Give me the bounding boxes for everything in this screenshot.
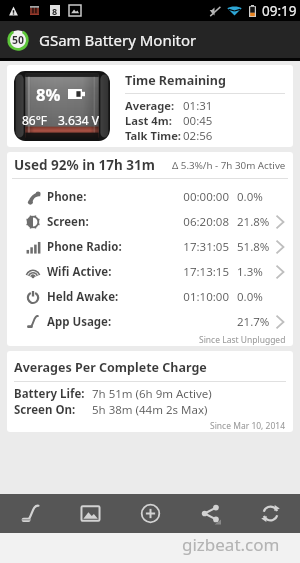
staticText: 0.0% [237, 189, 271, 205]
staticText: 7h 51m (6h 9m Active) [92, 386, 212, 402]
staticText: Talk Time: [125, 128, 181, 143]
staticText: 8% [36, 83, 61, 105]
staticText: Battery Life: [14, 386, 85, 402]
button[interactable]: Screenshot [60, 494, 120, 533]
staticText: 86°F [22, 112, 48, 128]
staticText: Phone Radio: [47, 239, 122, 255]
staticText: Wifi Active: [47, 264, 112, 280]
staticText: Average: [125, 98, 175, 113]
staticText: gizbeat.com [182, 533, 280, 556]
button[interactable]: Battery graph [0, 494, 60, 533]
button[interactable]: Share [180, 494, 240, 533]
button[interactable]: App Usage: [7, 309, 293, 334]
staticText: 21.7% [237, 314, 271, 330]
staticText: GSam Battery Monitor [39, 30, 197, 50]
staticText: 0.0% [237, 289, 271, 305]
staticText: Screen On: [14, 402, 76, 418]
staticText: 09:19 [262, 2, 297, 20]
staticText: Δ 5.3%/h - 7h 30m Active [172, 159, 286, 172]
staticText: 51.8% [237, 239, 271, 255]
staticText: Averages Per Complete Charge [14, 359, 207, 376]
staticText: Used 92% in 17h 31m [14, 156, 155, 174]
button[interactable]: Refresh [240, 494, 300, 533]
staticText: Held Awake: [47, 289, 119, 305]
staticText: 21.8% [237, 214, 271, 230]
staticText: Since Mar 10, 2014 [210, 420, 286, 432]
staticText: 17:13:15 [174, 264, 229, 280]
staticText: 01:31 [183, 98, 213, 113]
staticText: 00:00:00 [174, 189, 229, 205]
button[interactable]: Held Awake: [7, 284, 293, 309]
staticText: 1.3% [237, 264, 271, 280]
staticText: 17:31:05 [174, 239, 229, 255]
staticText: 00:45 [183, 113, 213, 128]
staticText: 5h 38m (44m 2s Max) [92, 402, 208, 418]
button[interactable]: Phone Radio: [7, 234, 293, 259]
staticText: 02:56 [183, 128, 213, 143]
staticText: 3.634 V [58, 112, 99, 128]
button[interactable]: Screen: [7, 209, 293, 234]
staticText: 50 [12, 33, 25, 47]
button[interactable]: Phone: [7, 184, 293, 209]
staticText: Time Remaining [125, 72, 226, 89]
staticText: Screen: [47, 214, 89, 230]
staticText: 06:20:08 [174, 214, 229, 230]
staticText: Phone: [47, 189, 87, 205]
staticText: Last 4m: [125, 113, 172, 128]
staticText: 8 [52, 5, 58, 16]
staticText: 01:10:00 [174, 289, 229, 305]
button[interactable]: Wifi Active: [7, 259, 293, 284]
staticText: App Usage: [47, 314, 112, 330]
staticText: Since Last Unplugged [199, 334, 286, 346]
button[interactable]: Add [120, 494, 180, 533]
button[interactable]: 50 [0, 21, 300, 58]
